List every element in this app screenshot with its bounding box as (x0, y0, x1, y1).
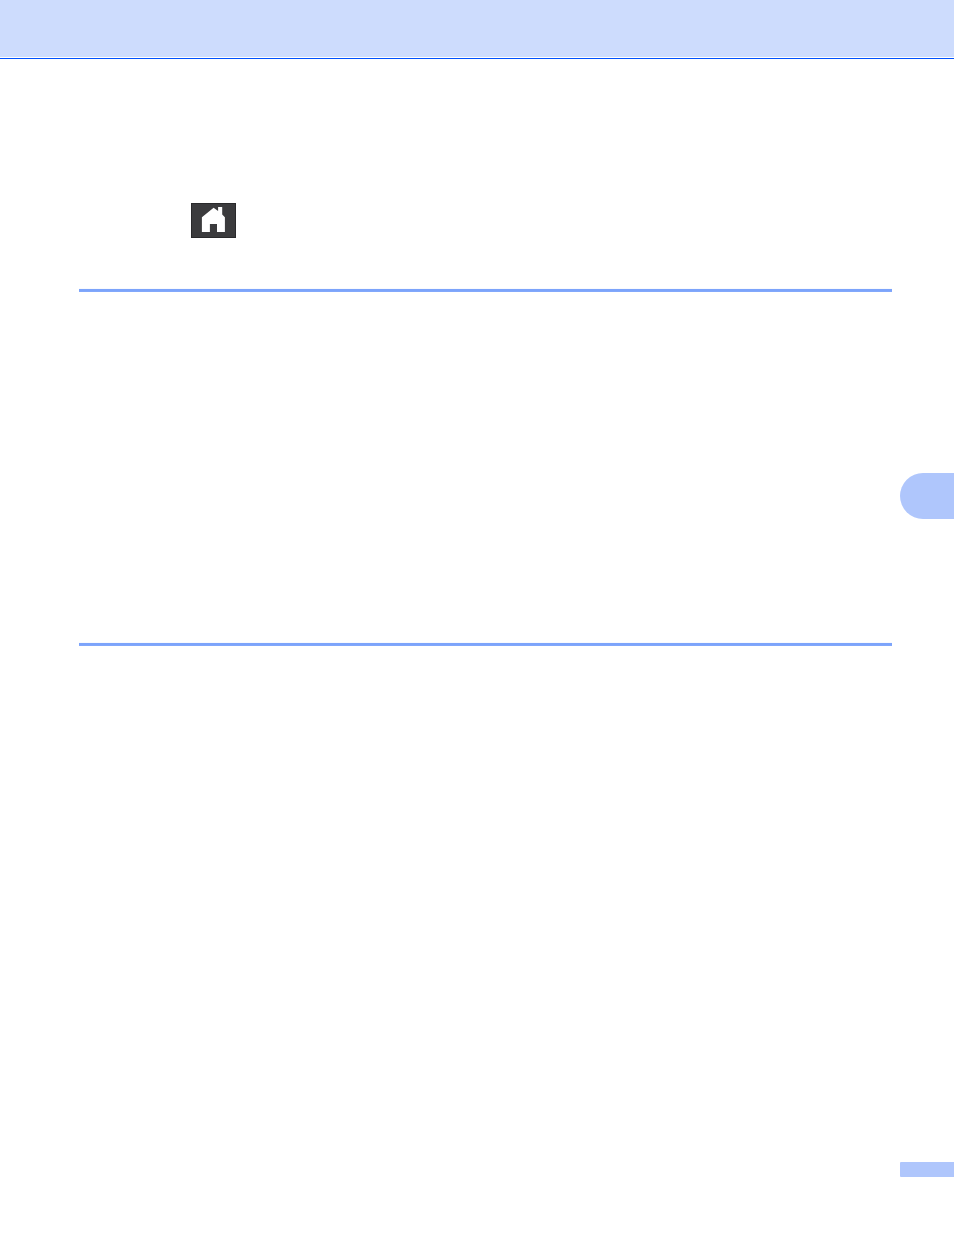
button[interactable]: Home (191, 203, 236, 238)
button[interactable]: App bar (0, 0, 954, 60)
button[interactable]: Scroll position (900, 473, 954, 519)
